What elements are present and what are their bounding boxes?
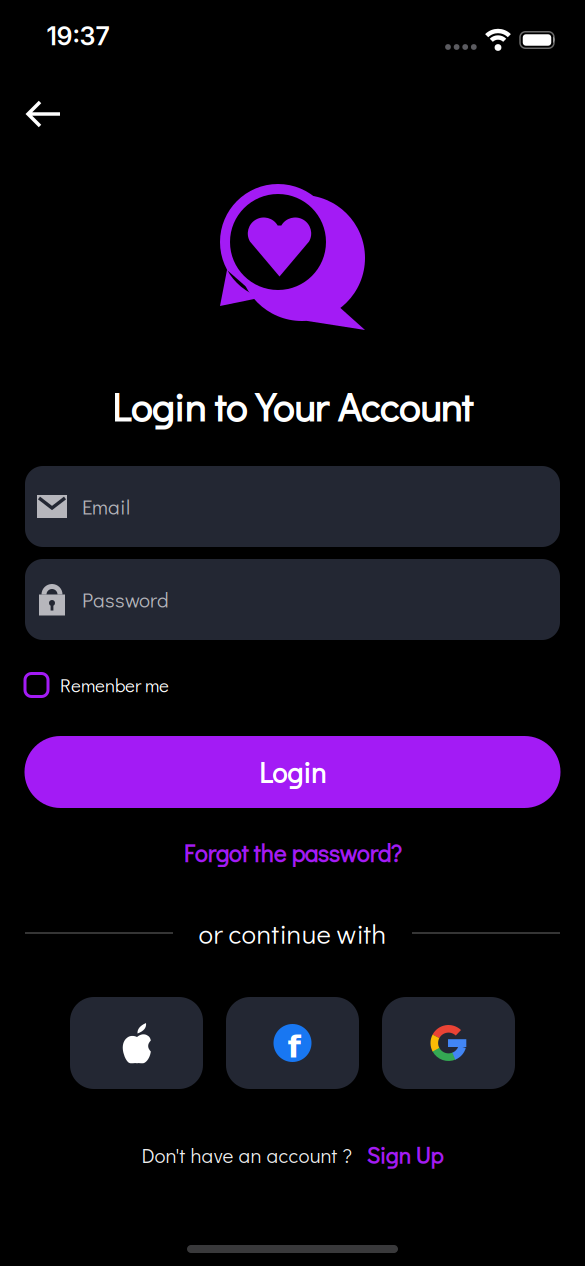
button[interactable]: Email (25, 466, 560, 547)
staticText: Remenber me (60, 673, 169, 697)
button[interactable]: Login (24, 736, 560, 808)
staticText: 19:37 (46, 21, 109, 51)
staticText: Login (259, 754, 326, 790)
button[interactable]: f (226, 997, 359, 1089)
staticText: or continue with (198, 915, 386, 951)
button[interactable]: Remenber me (25, 673, 169, 697)
button[interactable] (70, 997, 203, 1089)
button[interactable] (22, 92, 66, 136)
button[interactable] (382, 997, 515, 1089)
staticText: f (287, 1029, 300, 1065)
staticText: Sign Up (366, 1140, 443, 1170)
button[interactable]: Sign Up (366, 1140, 443, 1170)
button[interactable]: Forgot the password? (183, 837, 401, 869)
button[interactable]: Password (25, 559, 560, 640)
staticText: Login to Your Account (111, 380, 472, 432)
staticText: Email (82, 493, 130, 520)
staticText: Password (82, 586, 169, 613)
staticText: Don't have an account ? (141, 1141, 352, 1169)
staticText: Forgot the password? (183, 837, 401, 869)
